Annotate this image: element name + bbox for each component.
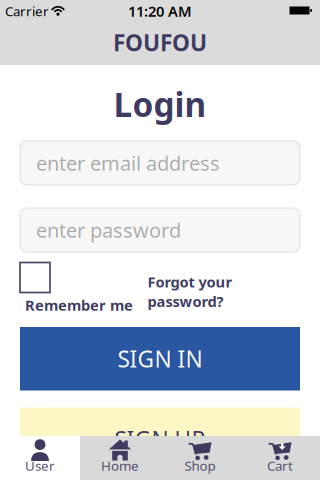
- staticText: FOUFOU: [113, 27, 207, 57]
- staticText: Home: [101, 457, 139, 474]
- button[interactable]: Forgot your password?: [147, 272, 232, 311]
- button[interactable]: enter email address: [20, 141, 300, 185]
- staticText: Shop: [184, 457, 215, 474]
- button[interactable]: User: [0, 436, 80, 480]
- button[interactable]: enter password: [20, 208, 300, 252]
- staticText: 11:20 AM: [128, 1, 192, 21]
- staticText: SIGN UP: [114, 424, 205, 454]
- staticText: Remember me: [25, 295, 133, 315]
- staticText: User: [25, 457, 55, 474]
- button[interactable]: Home: [80, 436, 160, 480]
- staticText: Cart: [267, 457, 293, 474]
- button[interactable]: Cart: [240, 436, 320, 480]
- button[interactable]: Shop: [160, 436, 240, 480]
- staticText: enter password: [36, 217, 181, 243]
- staticText: Carrier: [5, 2, 49, 20]
- staticText: Login: [113, 82, 206, 126]
- button[interactable]: SIGN IN: [20, 327, 300, 390]
- staticText: Forgot your password?: [147, 272, 232, 311]
- button[interactable]: Remember me: [20, 261, 130, 311]
- staticText: SIGN IN: [117, 344, 202, 374]
- button[interactable]: SIGN UP: [20, 407, 300, 471]
- staticText: enter email address: [36, 150, 220, 176]
